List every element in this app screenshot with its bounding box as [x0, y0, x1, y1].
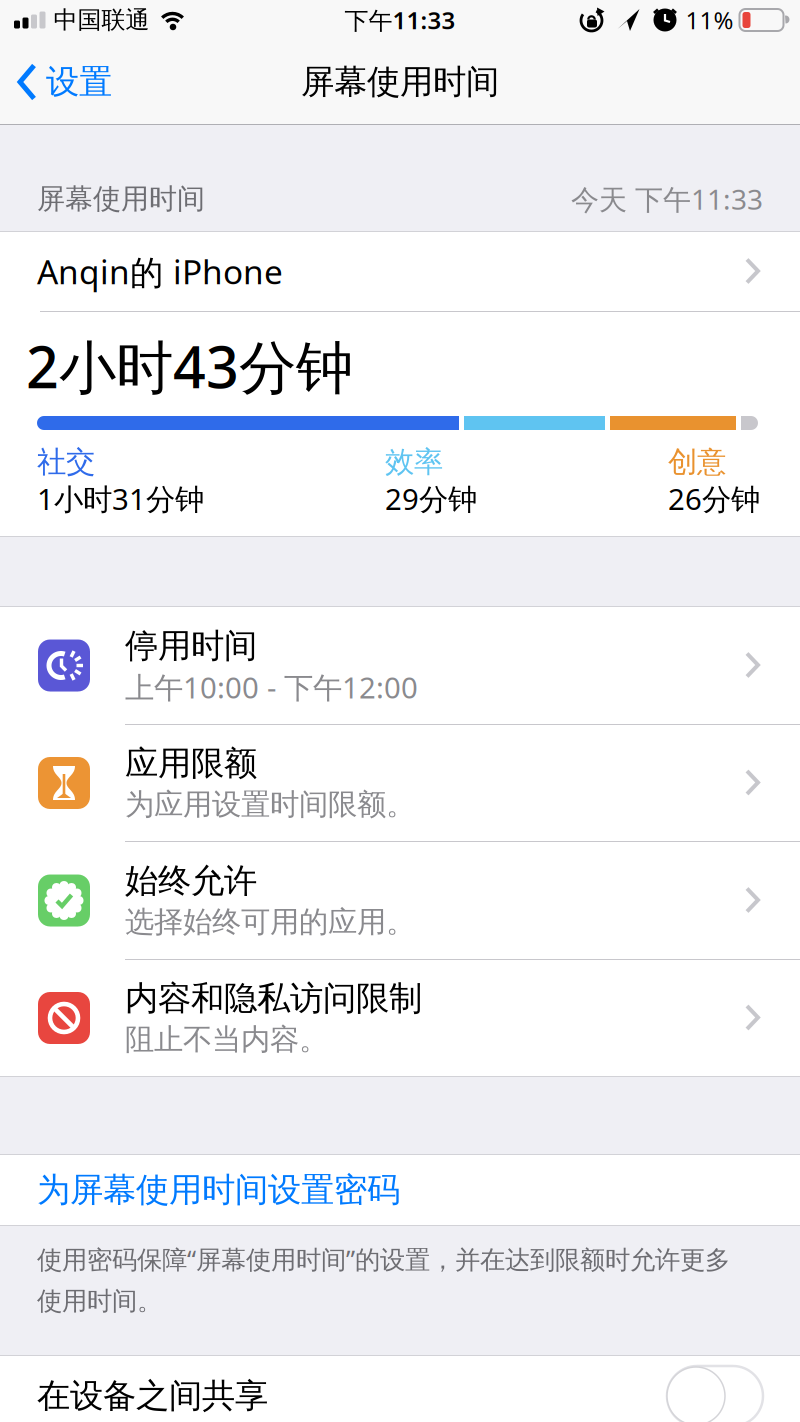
staticText: 中国联通 [53, 5, 149, 35]
staticText: 今天 下午11:33 [571, 180, 763, 218]
staticText: 上午10:00 - 下午12:00 [125, 667, 418, 706]
button[interactable]: 为屏幕使用时间设置密码 [0, 1155, 800, 1225]
staticText: 29分钟 [385, 479, 477, 518]
staticText: 下午11:33 [344, 4, 455, 36]
staticText: 创意 [668, 444, 726, 480]
button[interactable]: 返回设置 [0, 62, 112, 102]
staticText: 停用时间 [125, 625, 257, 666]
staticText: 为屏幕使用时间设置密码 [37, 1169, 400, 1210]
staticText: 11% [685, 4, 733, 36]
staticText: 应用限额 [125, 743, 257, 784]
staticText: 内容和隐私访问限制 [125, 978, 422, 1019]
staticText: Anqin的 iPhone [37, 249, 283, 294]
staticText: 2小时43分钟 [26, 328, 353, 404]
staticText: 1小时31分钟 [37, 479, 204, 518]
staticText: 效率 [385, 444, 443, 480]
staticText: 设置 [46, 61, 112, 102]
staticText: 屏幕使用时间 [301, 61, 499, 102]
button[interactable]: Anqin的 iPhone [0, 232, 800, 311]
staticText: 社交 [37, 444, 95, 480]
staticText: 选择始终可用的应用。 [125, 904, 415, 940]
button[interactable]: 内容和隐私访问限制 [0, 960, 800, 1076]
button[interactable]: 停用时间 [0, 607, 800, 724]
button[interactable]: 在设备之间共享 [0, 1356, 800, 1422]
staticText: 屏幕使用时间 [37, 182, 205, 216]
staticText: 使用时间。 [37, 1285, 162, 1316]
staticText: 使用密码保障“屏幕使用时间”的设置，并在达到限额时允许更多 [37, 1242, 730, 1276]
button[interactable]: 应用限额 [0, 725, 800, 841]
staticText: 26分钟 [668, 479, 760, 518]
staticText: 在设备之间共享 [37, 1375, 268, 1416]
staticText: 为应用设置时间限额。 [125, 786, 415, 822]
button[interactable]: 始终允许 [0, 842, 800, 959]
staticText: 始终允许 [125, 860, 257, 901]
staticText: 阻止不当内容。 [125, 1021, 328, 1057]
